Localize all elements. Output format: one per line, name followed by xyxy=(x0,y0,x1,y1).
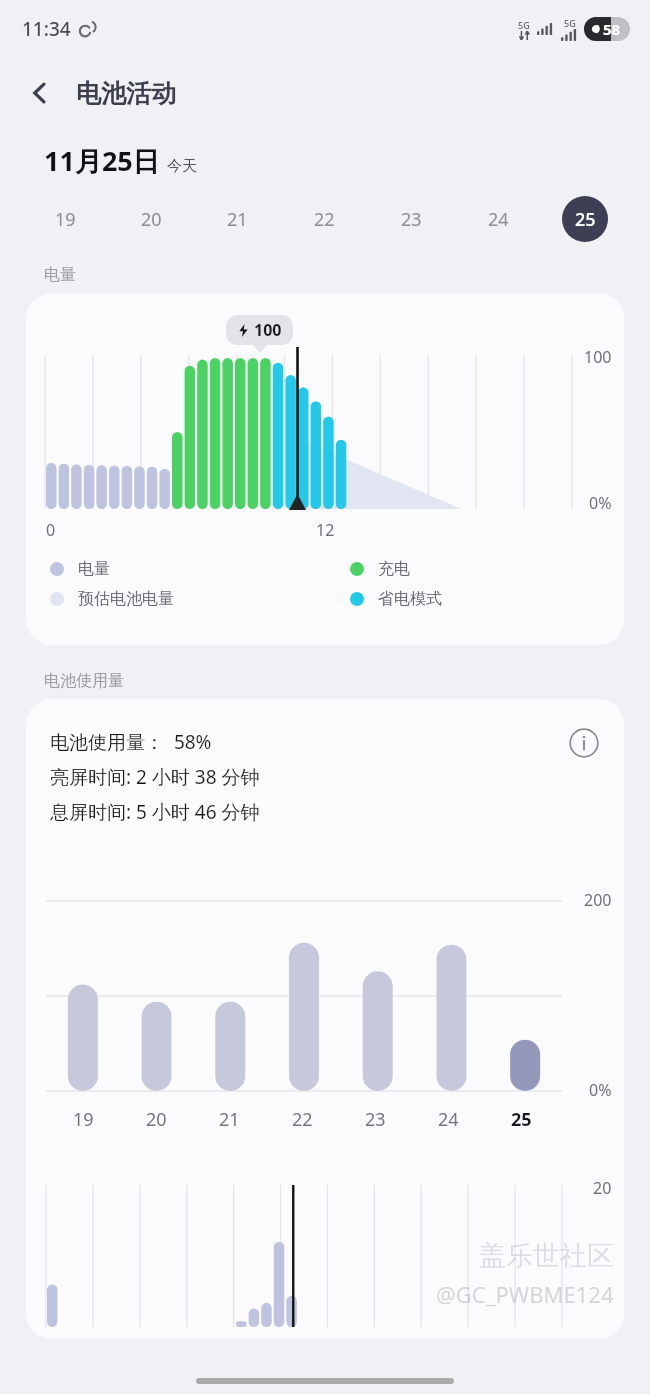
staticText: 24 xyxy=(488,207,509,232)
staticText: 100 xyxy=(584,346,612,368)
staticText: 0 xyxy=(46,519,56,541)
button[interactable]: 22 xyxy=(280,193,367,245)
staticText: 22 xyxy=(314,207,335,232)
button[interactable]: 23 xyxy=(367,193,454,245)
staticText: 盖乐世社区 xyxy=(479,1239,614,1273)
staticText: 22 xyxy=(292,1107,313,1132)
button[interactable]: 19 xyxy=(22,193,108,245)
staticText: 息屏时间: 5 小时 46 分钟 xyxy=(50,799,260,825)
button[interactable]: 25 xyxy=(541,193,628,245)
button[interactable]: Info xyxy=(562,721,606,765)
staticText: 0% xyxy=(589,492,612,514)
staticText: 省电模式 xyxy=(378,589,442,609)
button[interactable]: 20 xyxy=(108,193,194,245)
staticText: 19 xyxy=(55,207,76,232)
staticText: 19 xyxy=(73,1107,94,1132)
staticText: 100 xyxy=(254,319,282,341)
staticText: 23 xyxy=(365,1107,386,1132)
staticText: 20 xyxy=(141,207,162,232)
staticText: 0% xyxy=(589,1079,612,1101)
staticText: 5G xyxy=(518,19,530,31)
button[interactable]: 24 xyxy=(454,193,541,245)
staticText: 充电 xyxy=(378,559,410,579)
button[interactable]: 21 xyxy=(194,193,280,245)
button[interactable]: Back xyxy=(16,69,64,117)
staticText: 预估电池电量 xyxy=(78,589,174,609)
staticText: 24 xyxy=(438,1107,459,1132)
staticText: 电量 xyxy=(78,559,110,579)
staticText: 20 xyxy=(146,1107,167,1132)
staticText: 电量 xyxy=(44,265,76,285)
staticText: 58 xyxy=(603,19,621,39)
staticText: 亮屏时间: 2 小时 38 分钟 xyxy=(50,764,260,790)
staticText: 25 xyxy=(511,1107,532,1132)
staticText: @GC_PWBME124 xyxy=(436,1279,614,1309)
staticText: 今天 xyxy=(167,157,197,176)
staticText: 电池活动 xyxy=(76,78,176,109)
staticText: 5G xyxy=(564,17,576,29)
staticText: 21 xyxy=(219,1107,240,1132)
staticText: 电池使用量 xyxy=(44,671,124,691)
staticText: 11月25日 xyxy=(44,142,160,179)
staticText: 21 xyxy=(227,207,248,232)
staticText: 电池使用量： 58% xyxy=(50,729,212,755)
staticText: 20 xyxy=(593,1177,612,1199)
staticText: 25 xyxy=(575,207,596,232)
staticText: 12 xyxy=(316,519,335,541)
staticText: 23 xyxy=(401,207,422,232)
staticText: 11:34 xyxy=(22,16,71,42)
staticText: 200 xyxy=(584,889,612,911)
